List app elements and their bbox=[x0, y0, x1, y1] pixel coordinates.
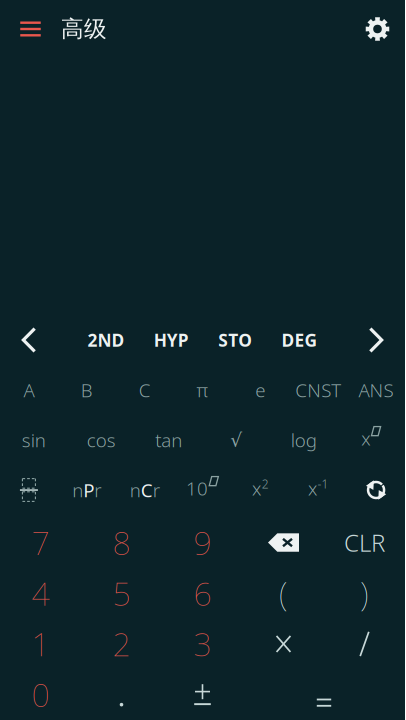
button[interactable]: π bbox=[174, 365, 231, 415]
button[interactable]: CNST bbox=[289, 365, 347, 415]
button[interactable]: x bbox=[231, 465, 289, 515]
button[interactable]: √ bbox=[202, 415, 270, 465]
button[interactable]: 5 bbox=[81, 568, 162, 619]
button[interactable]: B bbox=[58, 365, 116, 415]
button[interactable]: ANS bbox=[347, 365, 405, 415]
staticText: x bbox=[308, 476, 317, 501]
staticText: 2ND bbox=[87, 328, 124, 351]
staticText: e bbox=[255, 378, 265, 402]
button[interactable]: 4 bbox=[0, 568, 81, 619]
staticText: 5 bbox=[112, 572, 130, 614]
button[interactable]: C bbox=[116, 365, 174, 415]
button[interactable]: cos bbox=[67, 415, 135, 465]
staticText: ANS bbox=[359, 378, 394, 402]
button[interactable]: ( bbox=[243, 568, 324, 619]
button[interactable]: Multiply bbox=[243, 619, 324, 669]
staticText: n bbox=[72, 478, 83, 502]
button[interactable]: Menu bbox=[0, 0, 61, 58]
button[interactable]: e bbox=[231, 365, 289, 415]
staticText: DEG bbox=[282, 328, 318, 351]
staticText: 2 bbox=[112, 623, 130, 665]
staticText: 1 bbox=[31, 623, 49, 665]
staticText: -1 bbox=[317, 476, 328, 492]
button[interactable]: 7 bbox=[0, 517, 81, 568]
staticText: ) bbox=[360, 571, 369, 615]
button[interactable]: 3 bbox=[162, 619, 243, 669]
staticText: 10 bbox=[186, 476, 208, 501]
button[interactable]: Next page bbox=[347, 315, 405, 365]
button[interactable]: log bbox=[270, 415, 337, 465]
button[interactable]: Decimal point bbox=[81, 669, 162, 720]
button[interactable]: 0 bbox=[0, 669, 81, 720]
staticText: 高级 bbox=[61, 15, 107, 43]
staticText: 0 bbox=[31, 673, 49, 716]
staticText: tan bbox=[155, 428, 182, 452]
staticText: 6 bbox=[193, 572, 211, 614]
staticText: cos bbox=[87, 428, 116, 452]
staticText: 8 bbox=[112, 521, 130, 564]
button[interactable]: A bbox=[0, 365, 58, 415]
button[interactable]: tan bbox=[135, 415, 202, 465]
button[interactable]: n bbox=[58, 465, 116, 515]
button[interactable]: x bbox=[337, 415, 405, 465]
button[interactable]: Previous page bbox=[0, 315, 58, 365]
staticText: x bbox=[252, 476, 261, 501]
button[interactable]: 10 bbox=[174, 465, 231, 515]
button[interactable]: ) bbox=[324, 568, 405, 619]
button[interactable]: STO bbox=[218, 315, 252, 365]
button[interactable]: 8 bbox=[81, 517, 162, 568]
staticText: C bbox=[141, 478, 153, 502]
staticText: ( bbox=[279, 571, 288, 615]
staticText: 3 bbox=[193, 623, 211, 665]
button[interactable]: 2 bbox=[81, 619, 162, 669]
staticText: 4 bbox=[31, 572, 49, 614]
staticText: CNST bbox=[295, 378, 341, 402]
button[interactable]: Delete bbox=[243, 517, 324, 568]
staticText: P bbox=[83, 478, 94, 502]
button[interactable]: Settings bbox=[350, 0, 405, 58]
staticText: π bbox=[196, 378, 208, 402]
button[interactable]: Plus or minus bbox=[162, 669, 243, 720]
staticText: 2 bbox=[262, 476, 269, 492]
staticText: r bbox=[153, 478, 160, 502]
button[interactable]: 1 bbox=[0, 619, 81, 669]
button[interactable]: Divide bbox=[324, 619, 405, 669]
staticText: STO bbox=[218, 328, 252, 351]
staticText: log bbox=[291, 428, 317, 452]
staticText: A bbox=[23, 378, 34, 402]
staticText: x bbox=[361, 426, 370, 451]
staticText: 9 bbox=[193, 521, 211, 564]
staticText: C bbox=[139, 378, 151, 402]
button[interactable]: Fraction bbox=[0, 465, 58, 515]
button[interactable]: DEG bbox=[282, 315, 318, 365]
staticText: CLR bbox=[344, 527, 385, 558]
staticText: sin bbox=[22, 428, 46, 452]
button[interactable]: n bbox=[116, 465, 174, 515]
staticText: r bbox=[94, 478, 101, 502]
button[interactable]: sin bbox=[0, 415, 67, 465]
staticText: √ bbox=[230, 429, 242, 451]
button[interactable]: HYP bbox=[154, 315, 189, 365]
button[interactable]: 6 bbox=[162, 568, 243, 619]
button[interactable]: 9 bbox=[162, 517, 243, 568]
staticText: 7 bbox=[31, 521, 49, 564]
button[interactable]: Swap bbox=[347, 465, 405, 515]
staticText: HYP bbox=[154, 328, 189, 351]
button[interactable]: CLR bbox=[324, 517, 405, 568]
staticText: B bbox=[81, 378, 93, 402]
button[interactable]: 2ND bbox=[87, 315, 124, 365]
staticText: n bbox=[130, 478, 141, 502]
button[interactable]: x bbox=[289, 465, 347, 515]
button[interactable]: Equals bbox=[243, 669, 405, 720]
